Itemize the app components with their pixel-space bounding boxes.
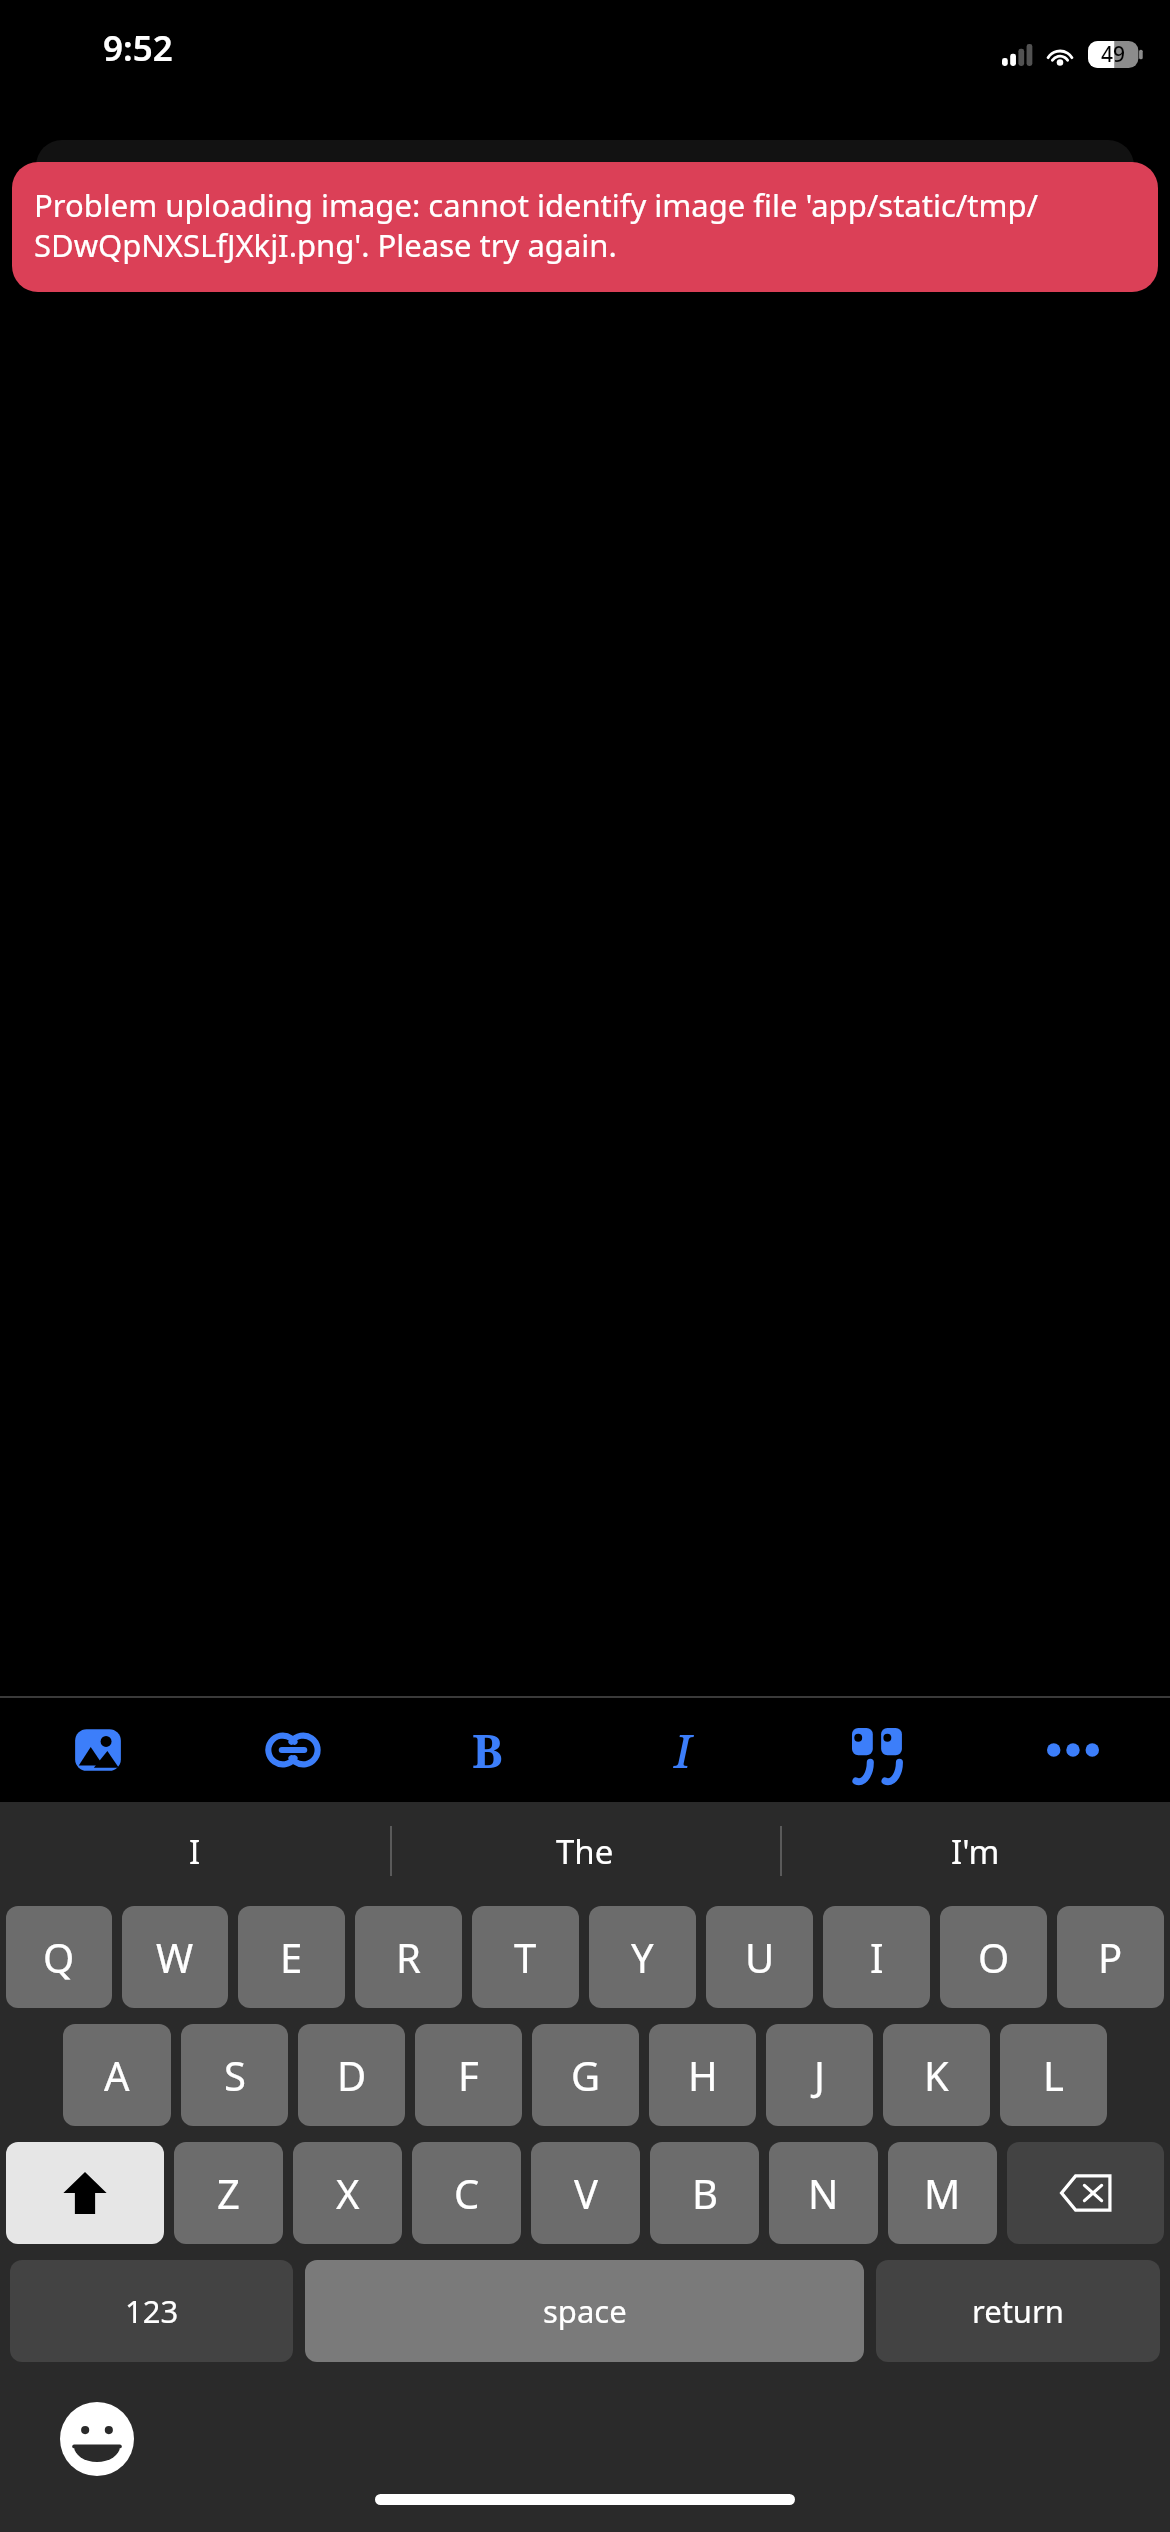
button[interactable]: Q [6, 1906, 112, 2008]
staticText: M [924, 2166, 961, 2220]
staticText: G [571, 2048, 601, 2102]
staticText: A [104, 2048, 130, 2102]
staticText: Z [217, 2166, 240, 2220]
button[interactable]: I'm [780, 1802, 1170, 1900]
button[interactable]: Backspace [1007, 2142, 1164, 2244]
button[interactable]: U [706, 1906, 813, 2008]
staticText: 9:52 [103, 24, 173, 72]
staticText: N [808, 2166, 839, 2220]
button[interactable]: O [940, 1906, 1047, 2008]
button[interactable]: I [0, 1802, 390, 1900]
button[interactable]: L [1000, 2024, 1107, 2126]
staticText: I [870, 1930, 884, 1984]
button[interactable]: Bold [390, 1698, 585, 1802]
button[interactable]: Insert image [0, 1698, 195, 1802]
button[interactable]: Emoji keyboard [60, 2402, 134, 2476]
button[interactable]: N [769, 2142, 878, 2244]
staticText: U [745, 1930, 775, 1984]
button[interactable]: T [472, 1906, 579, 2008]
button[interactable]: V [531, 2142, 640, 2244]
staticText: Problem uploading image: cannot identify… [34, 184, 1136, 266]
button[interactable]: A [63, 2024, 171, 2126]
staticText: 49 [1101, 40, 1126, 69]
staticText: E [280, 1930, 303, 1984]
staticText: D [337, 2048, 367, 2102]
button[interactable]: Y [589, 1906, 696, 2008]
button[interactable]: J [766, 2024, 873, 2126]
staticText: Q [43, 1930, 75, 1984]
staticText: B [472, 1719, 503, 1782]
button[interactable]: space [305, 2260, 864, 2362]
button[interactable]: K [883, 2024, 990, 2126]
staticText: H [688, 2048, 718, 2102]
button[interactable]: I [823, 1906, 930, 2008]
staticText: I [674, 1719, 692, 1782]
button[interactable]: Quote [780, 1698, 975, 1802]
button[interactable]: 123 [10, 2260, 293, 2362]
staticText: C [454, 2166, 480, 2220]
button[interactable]: E [238, 1906, 345, 2008]
staticText: return [972, 2290, 1064, 2332]
staticText: K [924, 2048, 949, 2102]
button[interactable]: B [650, 2142, 759, 2244]
staticText: X [336, 2166, 360, 2220]
button[interactable]: Italic [585, 1698, 780, 1802]
button[interactable]: R [355, 1906, 462, 2008]
button[interactable]: More options [975, 1698, 1170, 1802]
staticText: S [224, 2048, 246, 2102]
staticText: V [574, 2166, 598, 2220]
staticText: B [692, 2166, 718, 2220]
button[interactable]: D [298, 2024, 405, 2126]
staticText: P [1098, 1930, 1123, 1984]
button[interactable]: S [181, 2024, 288, 2126]
button[interactable]: Shift [6, 2142, 164, 2244]
staticText: L [1043, 2048, 1064, 2102]
staticText: 123 [125, 2290, 179, 2332]
staticText: Y [631, 1930, 654, 1984]
button[interactable]: W [122, 1906, 228, 2008]
button[interactable]: P [1057, 1906, 1164, 2008]
button[interactable]: Insert link [195, 1698, 390, 1802]
button[interactable]: The [390, 1802, 780, 1900]
staticText: I'm [951, 1829, 1000, 1874]
staticText: The [556, 1829, 614, 1874]
staticText: O [978, 1930, 1010, 1984]
button[interactable]: H [649, 2024, 756, 2126]
staticText: W [156, 1930, 194, 1984]
button[interactable]: Problem uploading image: cannot identify… [12, 162, 1158, 292]
staticText: space [543, 2290, 627, 2332]
button[interactable]: X [293, 2142, 402, 2244]
staticText: T [514, 1930, 537, 1984]
button[interactable]: F [415, 2024, 522, 2126]
button[interactable]: C [412, 2142, 521, 2244]
staticText: I [189, 1829, 201, 1874]
button[interactable]: M [888, 2142, 997, 2244]
button[interactable]: G [532, 2024, 639, 2126]
staticText: F [458, 2048, 479, 2102]
staticText: J [814, 2048, 825, 2102]
button[interactable]: return [876, 2260, 1160, 2362]
staticText: R [396, 1930, 421, 1984]
button[interactable]: Z [174, 2142, 283, 2244]
